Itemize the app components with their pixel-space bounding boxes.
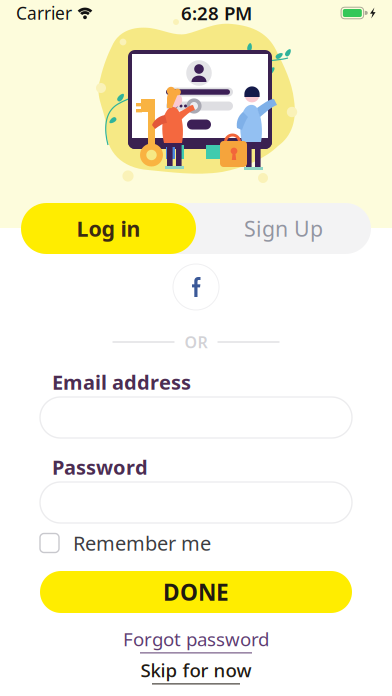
- button[interactable]: Skip for now: [140, 661, 251, 681]
- button[interactable]: Log in: [21, 203, 196, 254]
- button[interactable]: Forgot password: [123, 630, 269, 650]
- staticText: Skip for now: [140, 658, 251, 682]
- staticText: Log in: [76, 214, 140, 243]
- button[interactable]: Sign Up: [196, 203, 371, 254]
- button[interactable]: Continue with Facebook: [173, 264, 219, 310]
- staticText: Forgot password: [123, 627, 269, 651]
- staticText: Sign Up: [244, 214, 323, 243]
- staticText: Remember me: [73, 530, 211, 556]
- staticText: OR: [184, 331, 207, 353]
- button[interactable]: Remember me: [40, 532, 352, 554]
- button[interactable]: DONE: [40, 571, 352, 613]
- staticText: Password: [52, 454, 148, 480]
- staticText: Carrier: [16, 1, 72, 24]
- staticText: Email address: [52, 369, 191, 395]
- staticText: DONE: [163, 577, 229, 607]
- staticText: 6:28 PM: [181, 1, 252, 25]
